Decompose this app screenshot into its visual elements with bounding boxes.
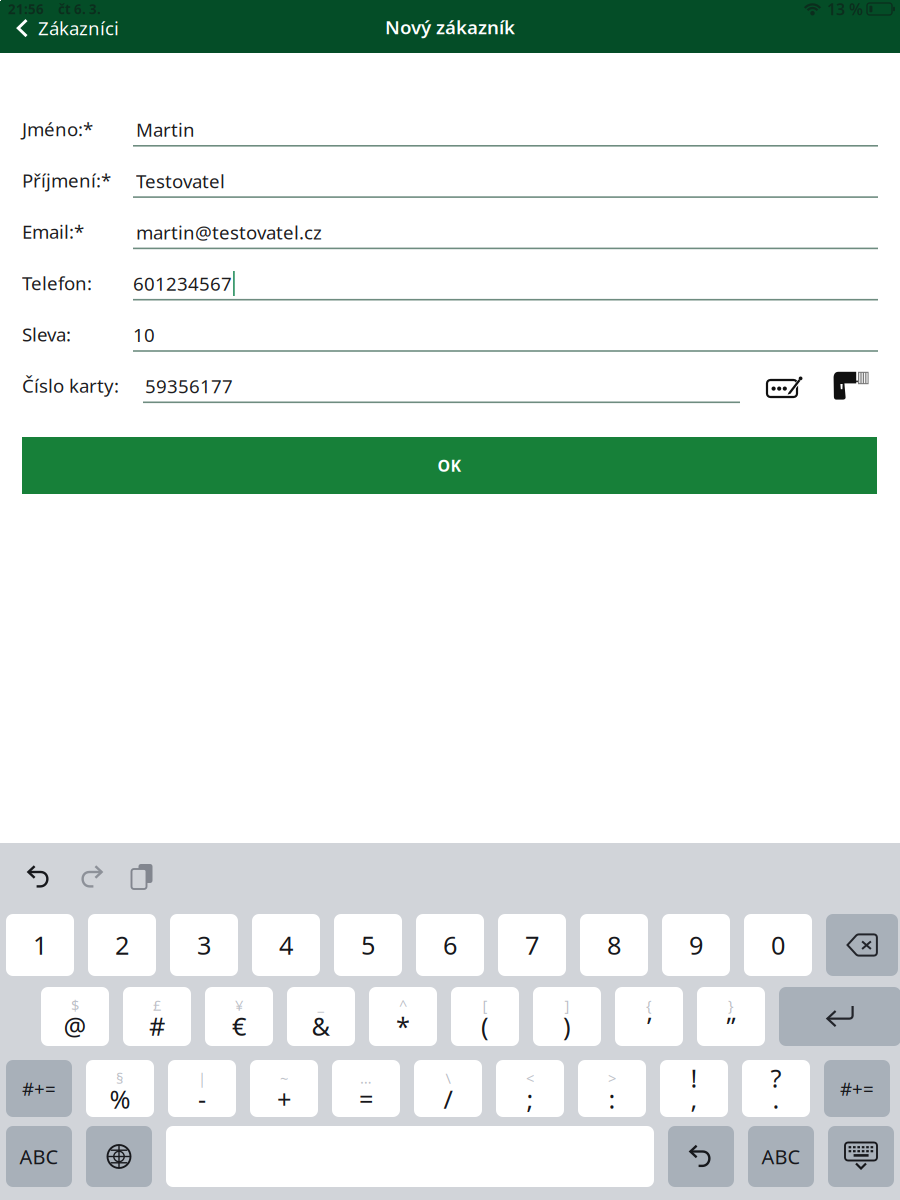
staticText: ; (526, 1082, 533, 1116)
button[interactable]: ] (533, 987, 601, 1046)
staticText: #+= (840, 1076, 874, 1101)
staticText: [ (482, 995, 487, 1015)
button[interactable]: 2 (88, 914, 156, 976)
button[interactable]: Načíst čárový kód (833, 371, 869, 400)
staticText: OK (437, 455, 461, 476)
button[interactable]: 0 (744, 914, 812, 976)
button[interactable]: 59356177 (143, 369, 740, 403)
button[interactable]: ~ (250, 1060, 318, 1117)
staticText: * (396, 1009, 410, 1043)
button[interactable]: 6 (416, 914, 484, 976)
staticText: = (359, 1082, 373, 1116)
staticText: Sleva: (22, 322, 71, 347)
staticText: … (360, 1068, 372, 1088)
staticText: | (198, 1068, 206, 1088)
staticText: @ (63, 1009, 86, 1043)
button[interactable]: ABC (6, 1126, 72, 1187)
staticText: ABC (761, 1143, 800, 1170)
staticText: Email:* (22, 219, 84, 244)
button[interactable]: 4 (252, 914, 320, 976)
staticText: #+= (22, 1076, 56, 1101)
button[interactable]: 1 (6, 914, 74, 976)
staticText: 1 (33, 928, 47, 962)
button[interactable]: 9 (662, 914, 730, 976)
button[interactable]: ^ (369, 987, 437, 1046)
staticText: / (443, 1082, 452, 1116)
staticText: , (690, 1082, 697, 1116)
staticText: ~ (280, 1068, 288, 1088)
staticText: < (526, 1068, 534, 1088)
staticText: § (116, 1068, 124, 1088)
staticText: ¥ (235, 995, 243, 1015)
button[interactable]: … (332, 1060, 400, 1117)
staticText: 7 (525, 928, 539, 962)
staticText: & (311, 1009, 330, 1043)
button[interactable]: Zpět (668, 1126, 734, 1187)
staticText: # (149, 1009, 165, 1043)
staticText: } (728, 995, 734, 1015)
staticText: Nový zákazník (385, 15, 515, 39)
button[interactable]: 601234567 (133, 266, 878, 300)
button[interactable]: [ (451, 987, 519, 1046)
button[interactable]: Jazyk (86, 1126, 152, 1187)
staticText: ] (564, 995, 569, 1015)
staticText: € (232, 1009, 246, 1043)
staticText: Jméno:* (22, 117, 93, 141)
staticText: martin@testovatel.cz (136, 220, 322, 245)
staticText: ABC (19, 1143, 58, 1170)
button[interactable]: 3 (170, 914, 238, 976)
staticText: $ (71, 995, 79, 1015)
staticText: Martin (136, 117, 195, 142)
staticText: Zákazníci (38, 16, 119, 40)
button[interactable]: 7 (498, 914, 566, 976)
button[interactable]: $ (41, 987, 109, 1046)
button[interactable]: § (86, 1060, 154, 1117)
button[interactable]: Zadat číslo karty ručně (767, 375, 803, 397)
staticText: 4 (279, 928, 293, 962)
button[interactable]: Skrýt klávesnici (828, 1126, 894, 1187)
button[interactable]: ! (660, 1060, 728, 1117)
staticText: 10 (133, 322, 155, 347)
button[interactable]: < (496, 1060, 564, 1117)
button[interactable]: ABC (748, 1126, 814, 1187)
button[interactable]: \ (414, 1060, 482, 1117)
button[interactable]: > (578, 1060, 646, 1117)
button[interactable]: #+= (824, 1060, 890, 1117)
staticText: 0 (771, 928, 785, 962)
button[interactable]: ? (742, 1060, 810, 1117)
staticText: 13 % (827, 0, 863, 20)
staticText: £ (153, 995, 161, 1015)
staticText: % (109, 1082, 130, 1116)
button[interactable]: _ (287, 987, 355, 1046)
button[interactable]: Vložit (120, 855, 158, 893)
staticText: - (198, 1082, 206, 1116)
button[interactable]: 8 (580, 914, 648, 976)
staticText: ( (481, 1009, 489, 1043)
staticText: . (772, 1082, 779, 1116)
button[interactable]: } (697, 987, 765, 1046)
staticText: Testovatel (136, 168, 225, 193)
button[interactable]: { (615, 987, 683, 1046)
button[interactable]: | (168, 1060, 236, 1117)
staticText: \ (445, 1068, 450, 1088)
staticText: 6 (443, 928, 457, 962)
button[interactable]: martin@testovatel.cz (133, 215, 878, 249)
staticText: Příjmení:* (22, 168, 111, 193)
button[interactable]: £ (123, 987, 191, 1046)
button[interactable]: #+= (6, 1060, 72, 1117)
button[interactable]: Vpřed (72, 858, 110, 896)
button[interactable]: Zákazníci (0, 12, 133, 44)
button[interactable]: Testovatel (133, 164, 878, 198)
button[interactable]: Zpět (20, 858, 58, 896)
staticText: ! (690, 1061, 697, 1095)
staticText: 21:56 (8, 0, 44, 18)
button[interactable]: 5 (334, 914, 402, 976)
button[interactable]: Enter (779, 987, 900, 1046)
button[interactable]: ¥ (205, 987, 273, 1046)
button[interactable]: OK (22, 437, 877, 494)
button[interactable]: Martin (133, 113, 878, 147)
staticText: Telefon: (22, 270, 92, 295)
button[interactable]: 10 (133, 318, 878, 352)
button[interactable]: Smazat (826, 914, 898, 976)
